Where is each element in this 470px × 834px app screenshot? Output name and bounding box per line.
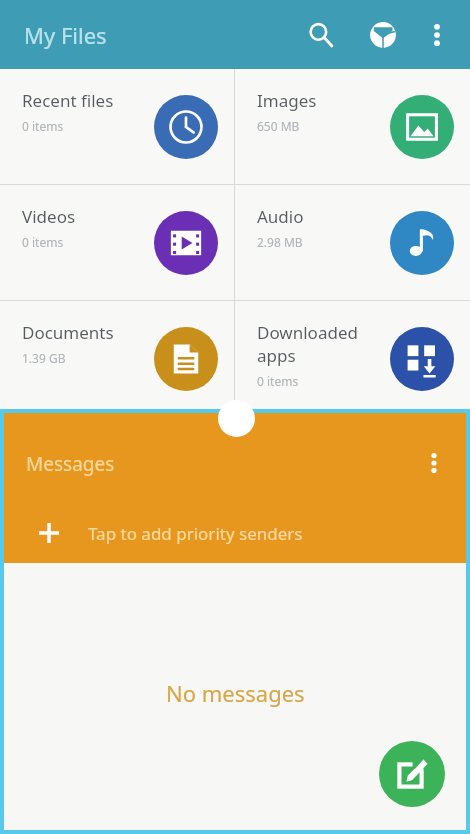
button[interactable]: Videos (0, 185, 234, 300)
button[interactable]: Search (298, 12, 344, 58)
button[interactable]: Documents (0, 301, 234, 416)
staticText: Recent files (22, 89, 114, 112)
staticText: No messages (166, 678, 305, 708)
button[interactable]: Audio (235, 185, 470, 300)
button[interactable]: Downloaded apps (235, 301, 470, 416)
button[interactable]: Recent files (0, 69, 234, 184)
staticText: Tap to add priority senders (88, 522, 303, 545)
staticText: 1.39 GB (22, 350, 66, 366)
staticText: Messages (26, 451, 115, 477)
button[interactable]: Storage usage (360, 12, 406, 58)
button[interactable]: Messages (4, 413, 466, 563)
button[interactable]: More options (416, 14, 458, 56)
button[interactable]: Messages options (414, 443, 454, 483)
staticText: Images (257, 89, 317, 112)
staticText: 0 items (257, 373, 299, 389)
staticText: Downloaded apps (257, 321, 389, 367)
staticText: 2.98 MB (257, 234, 303, 250)
button[interactable]: Images (235, 69, 470, 184)
staticText: 650 MB (257, 118, 300, 134)
staticText: My Files (24, 20, 107, 50)
button[interactable]: Resize panel (218, 400, 255, 437)
staticText: Audio (257, 205, 304, 228)
staticText: Documents (22, 321, 114, 344)
button[interactable]: Compose message (379, 741, 445, 807)
staticText: 0 items (22, 234, 64, 250)
button[interactable]: Tap to add priority senders (4, 503, 466, 563)
staticText: Videos (22, 205, 76, 228)
staticText: 0 items (22, 118, 64, 134)
